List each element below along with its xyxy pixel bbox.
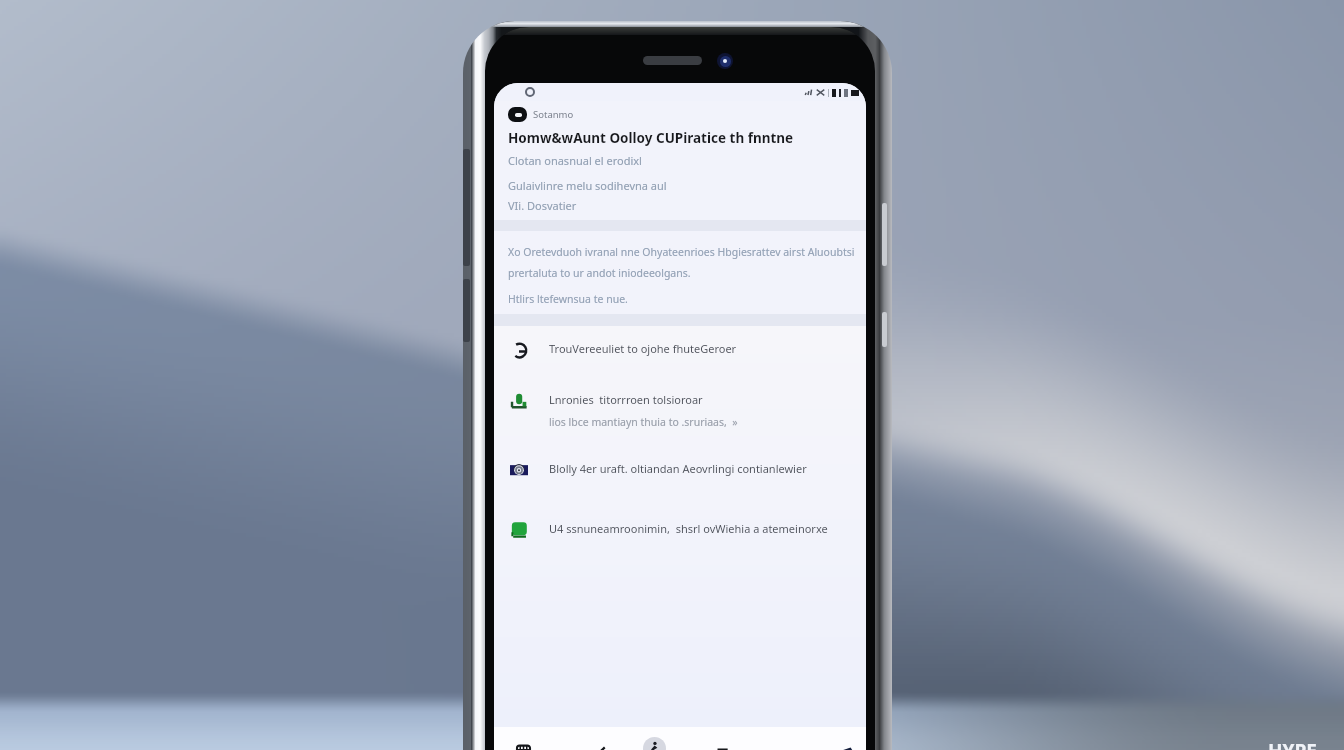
button[interactable]: Blolly 4er uraft. oltiandan Aeovrlingi c… [494, 460, 866, 480]
button[interactable]: List [707, 733, 739, 750]
button[interactable]: TrouVereeuliet to ojohe fhuteGeroer [494, 340, 866, 360]
button[interactable]: Activity [638, 732, 670, 750]
button[interactable]: Calendar [507, 733, 539, 750]
button[interactable]: Bookmark [832, 733, 864, 750]
staticText: HYPE [1268, 738, 1317, 750]
staticText: Lnronies titorrroen tolsioroar [549, 392, 703, 407]
staticText: VIi. Dosvatier [508, 198, 577, 213]
staticText: Gulaivlinre melu sodihevna aul [508, 178, 667, 193]
staticText: TrouVereeuliet to ojohe fhuteGeroer [549, 341, 737, 356]
button[interactable]: Sotanmo [494, 106, 866, 123]
staticText: Sotanmo [533, 108, 574, 121]
staticText: Xo Oretevduoh ivranal nne Ohyateenrioes … [508, 245, 858, 281]
staticText: Homw&wAunt Oolloy CUPiratice th fnntne [508, 129, 794, 147]
staticText: lios lbce mantiayn thuia to .sruriaas, » [549, 415, 738, 429]
button[interactable]: Send [582, 733, 614, 750]
staticText: U4 ssnuneamroonimin, shsrl ovWiehia a at… [549, 521, 828, 536]
staticText: Clotan onasnual el erodixl [508, 153, 642, 168]
button[interactable]: Lnronies titorrroen tolsioroar [494, 391, 866, 429]
staticText: Blolly 4er uraft. oltiandan Aeovrlingi c… [549, 461, 807, 476]
button[interactable]: U4 ssnuneamroonimin, shsrl ovWiehia a at… [494, 520, 866, 540]
staticText: Htlirs ltefewnsua te nue. [508, 292, 628, 306]
